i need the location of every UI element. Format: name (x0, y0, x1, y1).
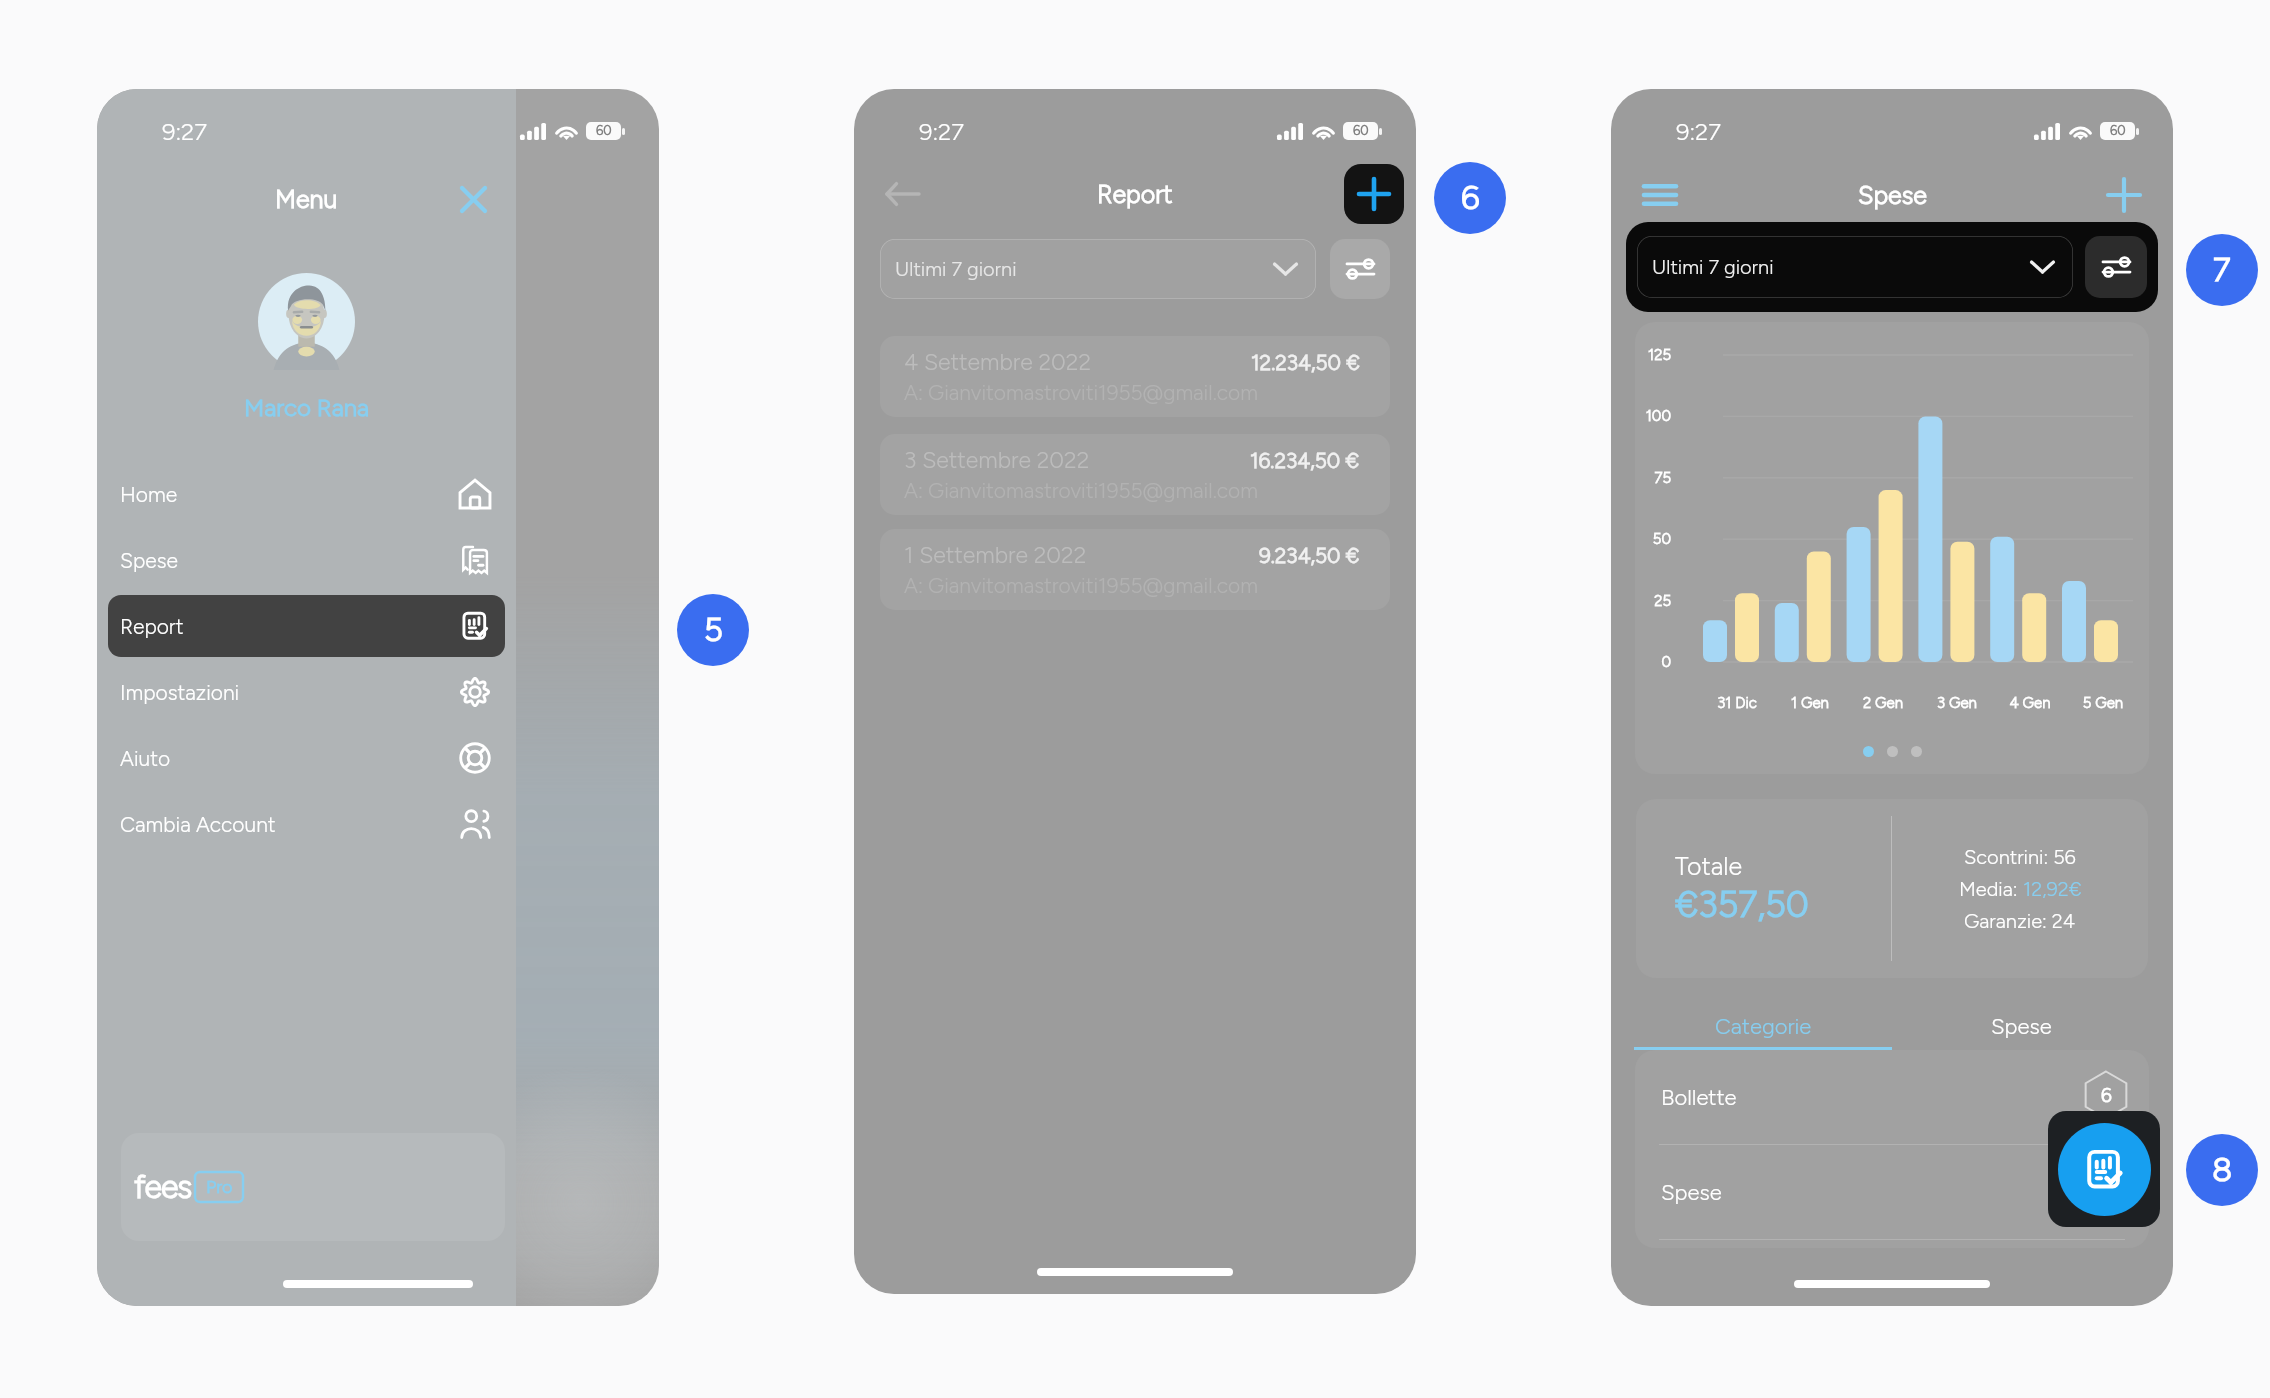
staticText: 7 (2213, 250, 2231, 290)
staticText: A: Gianvitomastroviti1955@gmail.com (904, 573, 1258, 598)
button[interactable]: 3 Settembre 2022 (880, 434, 1390, 515)
staticText: 0 (1635, 653, 1671, 671)
button[interactable]: Add expense (2101, 172, 2147, 218)
staticText: Ultimi 7 giorni (1652, 255, 1774, 279)
staticText: 3 Settembre 2022 (904, 446, 1090, 474)
staticText: 2 Gen (1843, 694, 1923, 712)
staticText: 12,92€ (2023, 877, 2082, 901)
staticText: Media: (1959, 877, 2023, 901)
staticText: 12.234,50 € (1251, 350, 1360, 375)
button[interactable]: Filters (2085, 236, 2147, 298)
staticText: 60 (2110, 123, 2126, 139)
button[interactable]: 8 (2186, 1134, 2258, 1206)
staticText: Cambia Account (120, 812, 276, 837)
staticText: 75 (1635, 469, 1671, 487)
button[interactable]: Aiuto (108, 727, 505, 789)
staticText: Pro (206, 1176, 233, 1198)
staticText: A: Gianvitomastroviti1955@gmail.com (904, 478, 1258, 503)
staticText: Aiuto (120, 746, 171, 771)
staticText: 31 Dic (1697, 694, 1777, 712)
staticText: A: Gianvitomastroviti1955@gmail.com (904, 380, 1258, 405)
staticText: 3 Gen (1917, 694, 1997, 712)
staticText: Spese (1661, 1179, 1722, 1205)
staticText: €357,50 (1675, 883, 1809, 926)
staticText: Spese (120, 548, 178, 573)
staticText: 60 (1353, 123, 1369, 139)
staticText: 8 (2212, 1150, 2233, 1190)
staticText: 9:27 (162, 117, 207, 146)
staticText: 16.234,50 € (1250, 448, 1360, 473)
button[interactable]: Spese (108, 529, 505, 591)
staticText: 1 Settembre 2022 (904, 541, 1087, 569)
staticText: Report (120, 614, 184, 639)
staticText: 9:27 (919, 117, 964, 146)
staticText: Menu (275, 184, 338, 214)
staticText: Ultimi 7 giorni (895, 257, 1017, 281)
staticText: 6 (2101, 1084, 2112, 1107)
staticText: Home (120, 482, 178, 507)
staticText: 1 Gen (1770, 694, 1850, 712)
button[interactable]: Cambia Account (108, 793, 505, 855)
staticText: Report (1097, 179, 1173, 209)
staticText: 4 Settembre 2022 (904, 348, 1092, 376)
button[interactable]: Filters (1330, 239, 1390, 299)
button[interactable]: Home (108, 463, 505, 525)
button[interactable]: Impostazioni (108, 661, 505, 723)
staticText: 50 (1635, 530, 1671, 548)
staticText: 9:27 (1676, 117, 1721, 146)
staticText: 100 (1635, 407, 1671, 425)
staticText: 25 (1635, 592, 1671, 610)
staticText: Impostazioni (120, 680, 240, 705)
staticText: 5 (704, 610, 723, 650)
button[interactable]: Back (880, 171, 926, 217)
button[interactable]: Bollette (1635, 1050, 2149, 1144)
button[interactable]: Categorie (1634, 1002, 1892, 1050)
staticText: fees (134, 1168, 192, 1206)
button[interactable]: Spese (1892, 1002, 2150, 1050)
button[interactable]: 1 Settembre 2022 (880, 529, 1390, 610)
button[interactable]: New receipt (2058, 1123, 2151, 1216)
staticText: 6 (1461, 178, 1480, 218)
button[interactable]: Ultimi 7 giorni (880, 239, 1316, 299)
staticText: Spese (1991, 1013, 2052, 1039)
button[interactable]: 6 (1434, 162, 1506, 234)
button[interactable]: 7 (2186, 234, 2258, 306)
button[interactable]: Report (108, 595, 505, 657)
button[interactable]: Ultimi 7 giorni (1637, 236, 2073, 298)
staticText: Scontrini: 56 (1964, 845, 2076, 869)
button[interactable]: fees (121, 1133, 505, 1241)
button[interactable]: Open menu (1637, 172, 1683, 218)
button[interactable]: 5 (677, 594, 749, 666)
staticText: Totale (1675, 851, 1743, 881)
button[interactable]: 4 Settembre 2022 (880, 336, 1390, 417)
staticText: 4 Gen (1990, 694, 2070, 712)
staticText: 60 (596, 123, 612, 139)
staticText: Categorie (1715, 1013, 1812, 1039)
staticText: Bollette (1661, 1084, 1737, 1110)
staticText: 9.234,50 € (1259, 543, 1360, 568)
button[interactable]: Close menu (450, 176, 496, 222)
button[interactable]: Spese (1635, 1145, 2149, 1239)
staticText: 125 (1635, 346, 1671, 364)
button[interactable]: Add report (1344, 164, 1404, 224)
staticText: 5 Gen (2063, 694, 2143, 712)
staticText: Spese (1858, 180, 1927, 210)
staticText: Marco Rana (97, 393, 516, 422)
staticText: Garanzie: 24 (1964, 909, 2076, 933)
